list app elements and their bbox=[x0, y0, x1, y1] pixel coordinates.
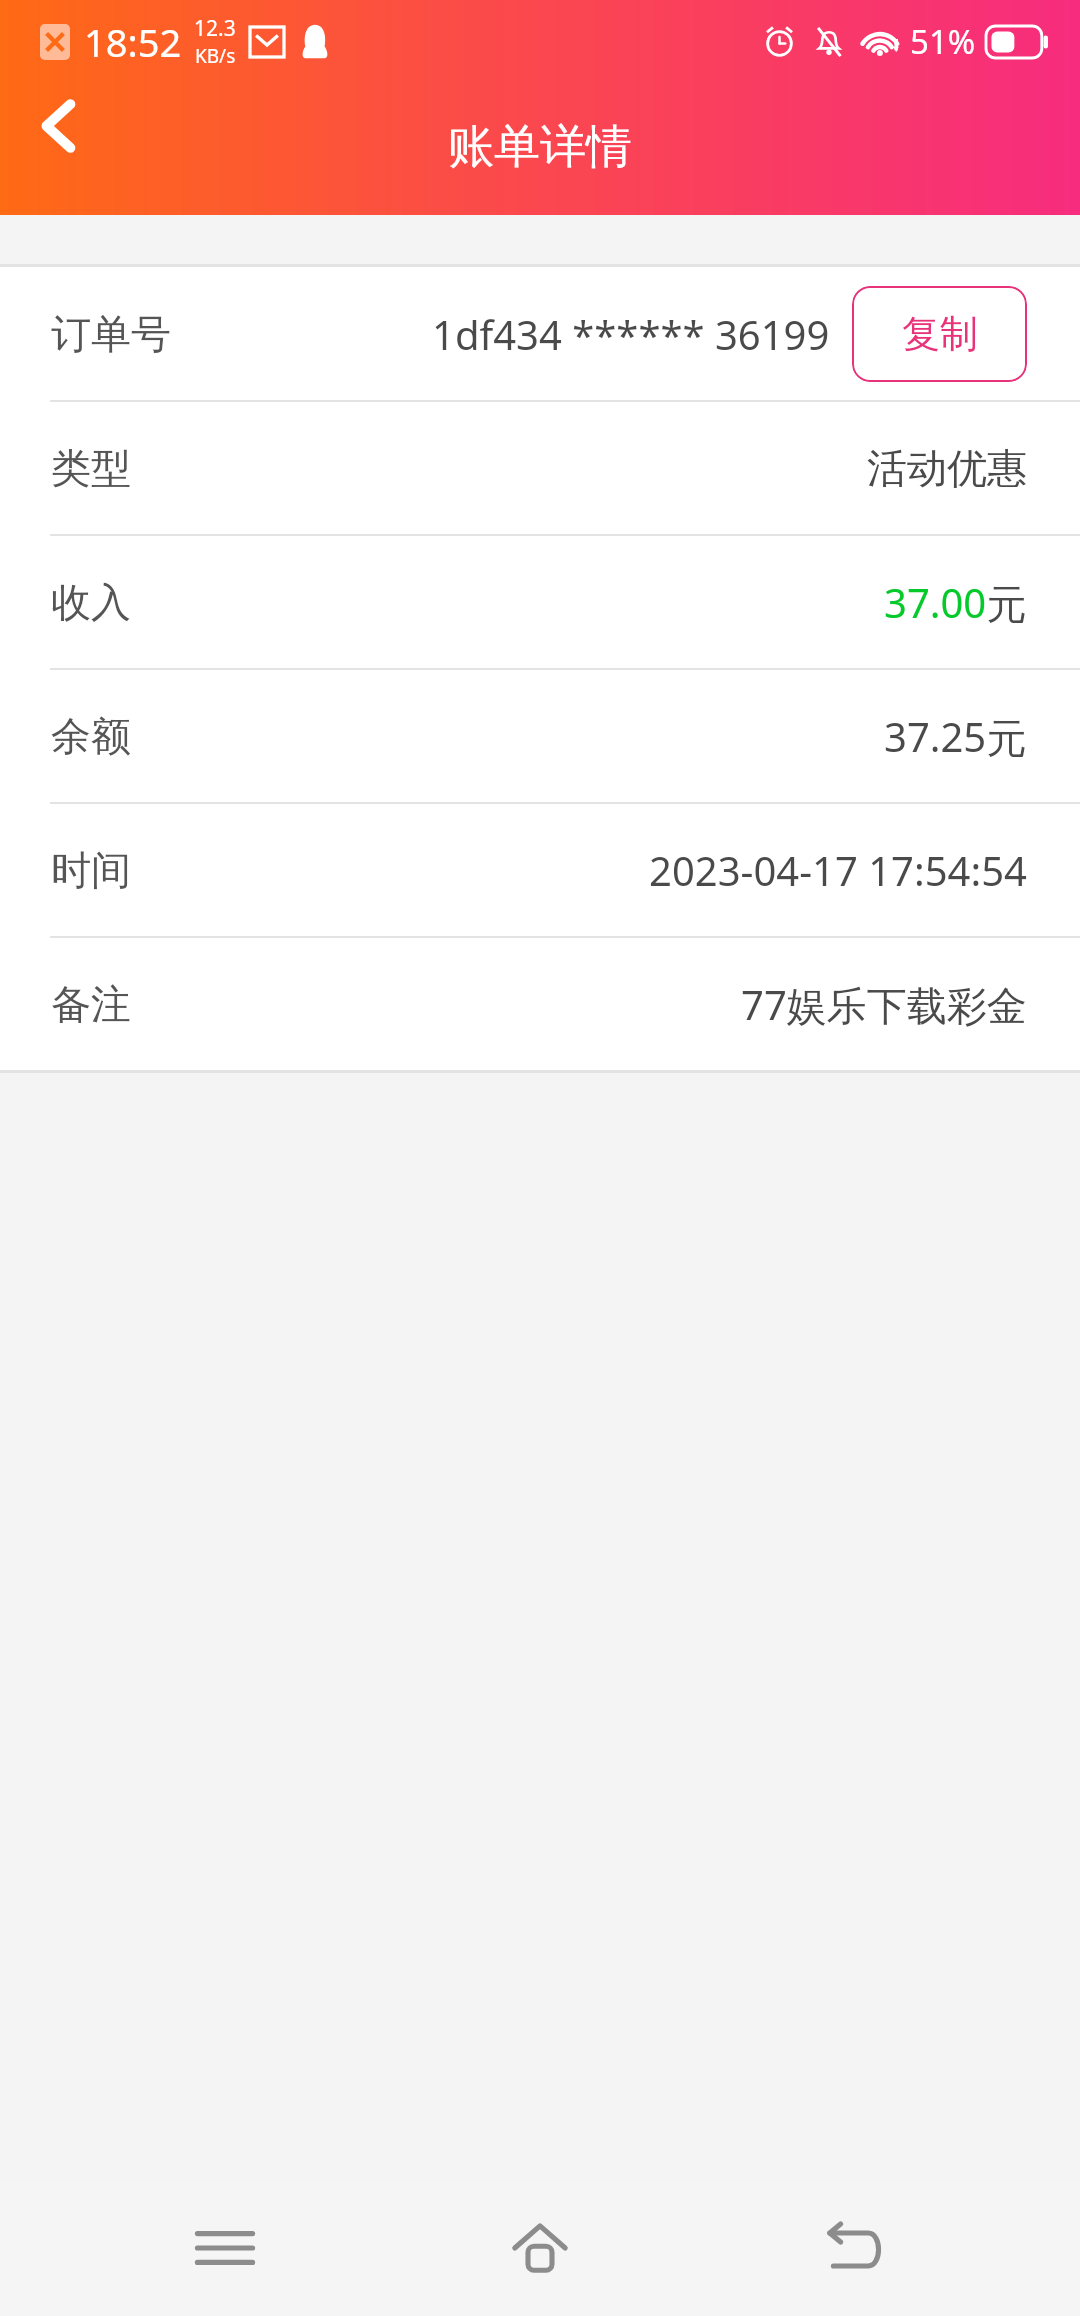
staticText: 37.25元 bbox=[884, 709, 1027, 764]
staticText: KB/s bbox=[195, 43, 236, 69]
button[interactable]: 复制 bbox=[852, 286, 1027, 382]
staticText: 1df434 ****** 36199 bbox=[432, 307, 830, 361]
staticText: 备注 bbox=[51, 979, 131, 1029]
staticText: 收入 bbox=[51, 577, 131, 627]
button[interactable]: 类型 bbox=[0, 402, 1080, 534]
staticText: 12.3 bbox=[194, 14, 236, 43]
staticText: 活动优惠 bbox=[867, 443, 1027, 493]
staticText: 77娱乐下载彩金 bbox=[741, 977, 1027, 1032]
button[interactable]: 时间 bbox=[0, 804, 1080, 936]
button[interactable]: 备注 bbox=[0, 938, 1080, 1070]
staticText: 18:52 bbox=[84, 16, 182, 68]
button[interactable]: 收入 bbox=[0, 536, 1080, 668]
staticText: 类型 bbox=[51, 443, 131, 493]
staticText: 37.00元 bbox=[884, 575, 1027, 630]
button[interactable]: Back bbox=[765, 2180, 945, 2316]
button[interactable]: Menu bbox=[135, 2180, 315, 2316]
staticText: 时间 bbox=[51, 845, 131, 895]
button[interactable]: Back bbox=[0, 66, 120, 186]
button[interactable]: 余额 bbox=[0, 670, 1080, 802]
button[interactable]: Home bbox=[450, 2180, 630, 2316]
staticText: 余额 bbox=[51, 711, 131, 761]
staticText: 账单详情 bbox=[448, 118, 632, 176]
staticText: 复制 bbox=[902, 310, 978, 358]
staticText: 订单号 bbox=[51, 309, 171, 359]
staticText: 2023-04-17 17:54:54 bbox=[649, 843, 1027, 897]
staticText: 51% bbox=[910, 19, 976, 64]
